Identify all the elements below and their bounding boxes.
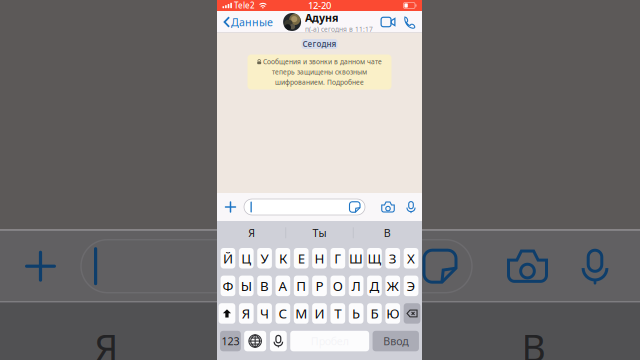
- staticText: М: [295, 305, 307, 322]
- button[interactable]: [244, 199, 365, 215]
- button[interactable]: Д: [367, 276, 382, 296]
- staticText: Ц: [241, 249, 251, 267]
- button[interactable]: Ввод: [373, 331, 419, 351]
- button[interactable]: Х: [404, 248, 418, 268]
- staticText: Д: [369, 277, 379, 295]
- button[interactable]: Верхний регистр: [219, 303, 235, 324]
- staticText: Сегодня: [302, 39, 336, 49]
- staticText: Ввод: [383, 334, 408, 348]
- staticText: 123: [221, 334, 239, 348]
- button[interactable]: Адуня: [283, 11, 373, 33]
- button[interactable]: Т: [330, 303, 345, 324]
- staticText: Щ: [367, 249, 381, 267]
- staticText: Ю: [386, 305, 399, 322]
- staticText: теперь защищены сквозным: [272, 68, 367, 76]
- staticText: Р: [315, 277, 323, 295]
- button[interactable]: К: [275, 248, 290, 268]
- staticText: Ь: [352, 305, 360, 322]
- staticText: Л: [352, 277, 361, 295]
- button[interactable]: Б: [367, 303, 382, 324]
- staticText: О: [333, 277, 343, 295]
- button[interactable]: У: [257, 248, 272, 268]
- staticText: Б: [370, 305, 378, 322]
- staticText: Я: [248, 226, 255, 240]
- button[interactable]: Видеозвонок: [377, 11, 399, 33]
- button[interactable]: П: [294, 276, 308, 296]
- staticText: Н: [314, 249, 324, 267]
- staticText: Сообщения и звонки в данном чате: [263, 57, 382, 66]
- staticText: И: [314, 305, 324, 322]
- button[interactable]: Пробел: [290, 331, 369, 351]
- button[interactable]: Сменить язык: [244, 331, 266, 351]
- button[interactable]: А: [275, 276, 290, 296]
- staticText: Х: [407, 249, 415, 267]
- staticText: В: [260, 277, 269, 295]
- button[interactable]: С: [275, 303, 290, 324]
- staticText: Данные: [231, 15, 273, 29]
- staticText: Ж: [387, 277, 399, 295]
- staticText: П: [296, 277, 306, 295]
- button[interactable]: Удалить: [404, 303, 420, 324]
- staticText: Я: [242, 305, 251, 322]
- button[interactable]: Прикрепить: [217, 194, 244, 220]
- button[interactable]: Ц: [239, 248, 254, 268]
- button[interactable]: Ф: [221, 276, 235, 296]
- button[interactable]: В: [257, 276, 272, 296]
- staticText: 12-20: [308, 0, 331, 12]
- button[interactable]: Я: [239, 303, 254, 324]
- staticText: Tele2: [234, 0, 255, 11]
- button[interactable]: З: [385, 248, 400, 268]
- staticText: А: [278, 277, 287, 295]
- button[interactable]: Звонок: [399, 11, 420, 33]
- staticText: Ты: [296, 322, 344, 360]
- button[interactable]: Данные: [217, 11, 275, 33]
- button[interactable]: Й: [221, 248, 235, 268]
- button[interactable]: И: [312, 303, 327, 324]
- button[interactable]: Е: [294, 248, 308, 268]
- button[interactable]: Ч: [257, 303, 272, 324]
- staticText: К: [279, 249, 287, 267]
- button[interactable]: Г: [330, 248, 345, 268]
- staticText: Я: [94, 322, 118, 360]
- staticText: Ч: [260, 305, 269, 322]
- staticText: п(-а) сегодня в 11:17: [305, 25, 373, 34]
- button[interactable]: Камера: [376, 194, 400, 220]
- staticText: Т: [334, 305, 341, 322]
- button[interactable]: Щ: [367, 248, 382, 268]
- button[interactable]: Ю: [385, 303, 400, 324]
- staticText: шифрованием. Подробнее: [275, 78, 364, 87]
- staticText: Э: [406, 277, 415, 295]
- button[interactable]: Диктовка: [270, 331, 287, 351]
- staticText: Ш: [349, 249, 363, 267]
- staticText: Ты: [312, 226, 326, 240]
- button[interactable]: Э: [404, 276, 418, 296]
- staticText: Ф: [222, 277, 233, 295]
- button[interactable]: Ы: [239, 276, 254, 296]
- staticText: У: [261, 249, 269, 267]
- button[interactable]: О: [330, 276, 345, 296]
- button[interactable]: Л: [349, 276, 363, 296]
- staticText: Адуня: [305, 10, 338, 25]
- staticText: Ы: [241, 277, 252, 295]
- staticText: З: [389, 249, 397, 267]
- button[interactable]: Голосовое сообщение: [400, 194, 422, 220]
- button[interactable]: Р: [312, 276, 327, 296]
- button[interactable]: 123: [220, 331, 241, 351]
- button[interactable]: М: [294, 303, 308, 324]
- staticText: Г: [334, 249, 341, 267]
- staticText: Й: [223, 249, 233, 267]
- button[interactable]: Ш: [349, 248, 363, 268]
- button[interactable]: Н: [312, 248, 327, 268]
- staticText: Е: [298, 249, 305, 267]
- button[interactable]: Ь: [349, 303, 363, 324]
- staticText: В: [384, 226, 391, 240]
- staticText: В: [521, 322, 545, 360]
- button[interactable]: Ж: [385, 276, 400, 296]
- staticText: С: [278, 305, 287, 322]
